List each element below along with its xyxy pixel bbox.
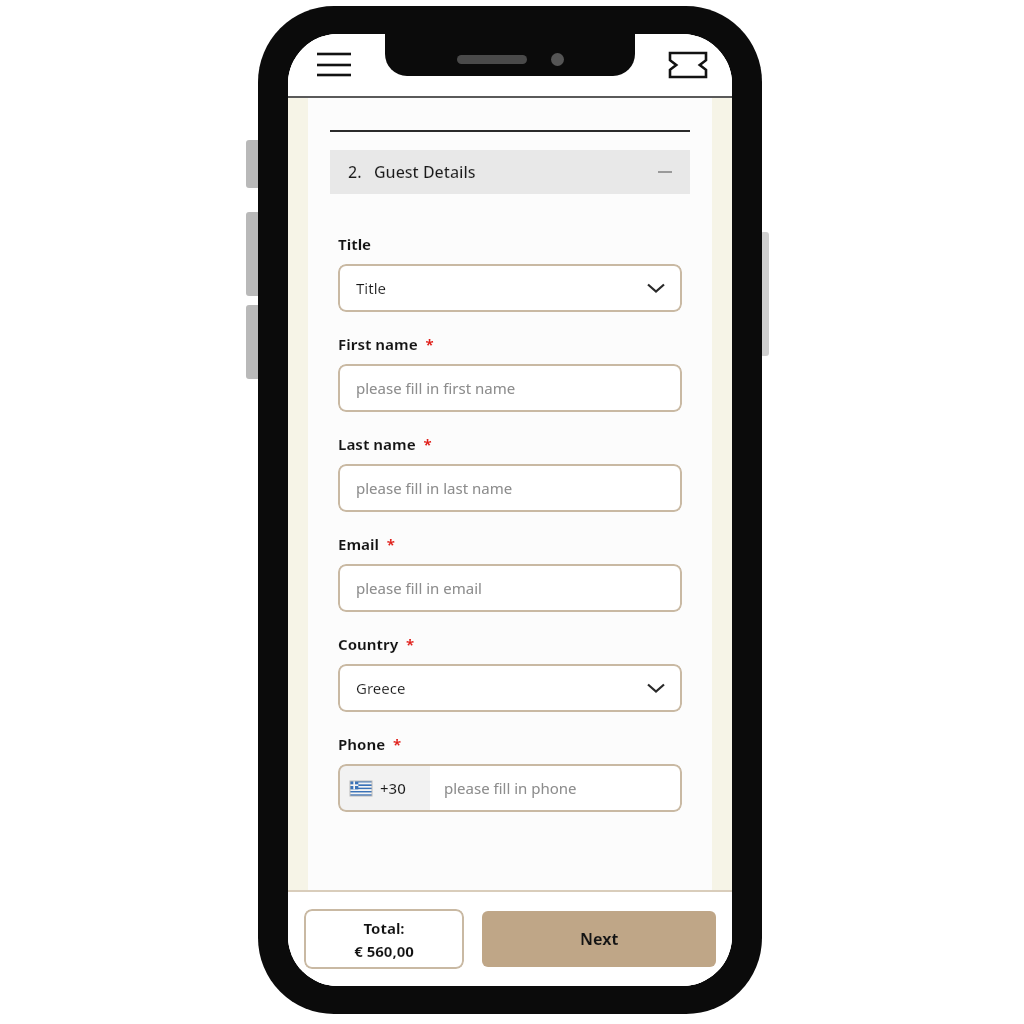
staticText: please fill in phone [444,778,577,798]
button[interactable]: please fill in first name [338,364,682,412]
button[interactable]: Greece [338,664,682,712]
button[interactable]: +30 [338,764,682,812]
staticText: Last name * [338,434,432,454]
staticText: please fill in first name [356,378,516,398]
staticText: Email * [338,534,395,554]
staticText: € 560,00 [354,941,414,961]
button[interactable]: Next [482,911,716,967]
staticText: please fill in last name [356,478,513,498]
staticText: Greece [356,678,406,698]
button[interactable]: please fill in email [338,564,682,612]
staticText: please fill in email [356,578,482,598]
staticText: Phone * [338,734,402,754]
staticText: 2. Guest Details [348,161,476,183]
button[interactable]: Menu [312,43,356,87]
staticText: Next [580,928,619,950]
staticText: Title [338,234,372,254]
button[interactable]: please fill in last name [338,464,682,512]
staticText: Title [356,278,386,298]
button[interactable]: Title [338,264,682,312]
staticText: First name * [338,334,434,354]
button[interactable]: Tickets [666,43,710,87]
staticText: Total: [363,918,405,938]
button[interactable]: Total: [304,909,464,969]
staticText: +30 [380,778,406,798]
staticText: Country * [338,634,415,654]
button[interactable]: 2. Guest Details [330,150,690,194]
